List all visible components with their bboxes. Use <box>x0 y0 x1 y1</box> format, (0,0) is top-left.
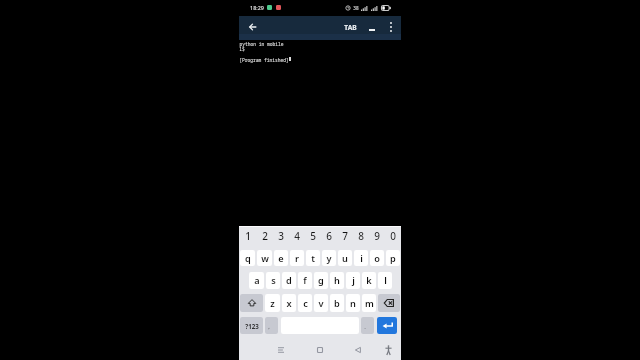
button[interactable]: g <box>314 272 328 289</box>
button[interactable]: u <box>338 250 352 266</box>
staticText: q <box>245 252 251 265</box>
staticText: f <box>303 274 307 287</box>
button[interactable]: TAB <box>339 18 361 36</box>
staticText: n <box>350 297 356 310</box>
button[interactable]: 3 <box>273 228 289 244</box>
button[interactable]: Enter <box>377 317 397 334</box>
staticText: 7 <box>342 229 348 243</box>
button[interactable]: p <box>386 250 400 266</box>
button[interactable]: Back <box>350 342 366 358</box>
button[interactable]: 7 <box>337 228 353 244</box>
button[interactable]: Backspace <box>378 294 400 312</box>
staticText: x <box>286 297 292 310</box>
button[interactable]: w <box>257 250 272 266</box>
button[interactable]: Shift <box>240 294 263 312</box>
staticText: u <box>342 252 348 265</box>
button[interactable]: Insert underscore <box>364 18 380 36</box>
staticText: p <box>390 252 396 265</box>
button[interactable]: 6 <box>321 228 337 244</box>
staticText: 38 <box>353 5 359 11</box>
button[interactable]: a <box>249 272 264 289</box>
staticText: 0 <box>390 229 396 243</box>
button[interactable]: n <box>346 294 360 312</box>
staticText: 4 <box>294 229 300 243</box>
button[interactable]: 4 <box>289 228 305 244</box>
button[interactable]: v <box>314 294 328 312</box>
button[interactable]: j <box>346 272 360 289</box>
staticText: TAB <box>344 23 357 32</box>
button[interactable]: Recents <box>273 342 289 358</box>
staticText: 3 <box>278 229 284 243</box>
staticText: t <box>311 252 315 265</box>
button[interactable]: i <box>354 250 368 266</box>
staticText: python in mobile <box>239 41 284 47</box>
staticText: 2 <box>262 229 268 243</box>
staticText: 5 <box>310 229 316 243</box>
button[interactable]: 9 <box>369 228 385 244</box>
staticText: b <box>334 297 340 310</box>
staticText: j <box>352 274 355 287</box>
button[interactable]: x <box>282 294 296 312</box>
staticText: d <box>286 274 292 287</box>
button[interactable]: 2 <box>256 228 273 244</box>
button[interactable]: l <box>378 272 392 289</box>
staticText: 18:29 <box>250 4 264 11</box>
staticText: [Program finished] <box>239 57 289 63</box>
button[interactable]: q <box>240 250 255 266</box>
staticText: h <box>334 274 340 287</box>
button[interactable]: Comma <box>265 317 278 334</box>
staticText: w <box>261 252 269 265</box>
button[interactable]: t <box>306 250 320 266</box>
button[interactable]: 8 <box>353 228 369 244</box>
staticText: ?123 <box>245 322 259 330</box>
other: Backspace <box>384 299 394 307</box>
button[interactable]: o <box>370 250 384 266</box>
button[interactable]: d <box>282 272 296 289</box>
staticText: e <box>278 252 284 265</box>
staticText: 6 <box>326 229 332 243</box>
staticText: z <box>270 297 275 310</box>
button[interactable]: k <box>362 272 376 289</box>
button[interactable]: e <box>274 250 288 266</box>
staticText: o <box>374 252 380 265</box>
button[interactable]: h <box>330 272 344 289</box>
staticText: c <box>303 297 308 310</box>
button[interactable]: s <box>266 272 280 289</box>
button[interactable]: m <box>362 294 376 312</box>
button[interactable]: Period <box>361 317 374 334</box>
button[interactable]: r <box>290 250 304 266</box>
button[interactable]: 0 <box>385 228 401 244</box>
staticText: 8 <box>358 229 364 243</box>
button[interactable]: z <box>265 294 280 312</box>
button[interactable]: c <box>298 294 312 312</box>
button[interactable]: y <box>322 250 336 266</box>
staticText: a <box>254 274 260 287</box>
button[interactable]: f <box>298 272 312 289</box>
staticText: 1 <box>245 229 251 243</box>
staticText: v <box>318 297 324 310</box>
staticText: s <box>271 274 276 287</box>
staticText: l <box>384 274 387 287</box>
staticText: i <box>360 252 363 265</box>
button[interactable]: Accessibility <box>380 342 396 358</box>
button[interactable]: Symbols <box>240 317 263 334</box>
staticText: y <box>326 252 332 265</box>
button[interactable]: More options <box>383 18 399 36</box>
staticText: g <box>318 274 324 287</box>
staticText: r <box>295 252 299 265</box>
staticText: , <box>268 323 270 331</box>
staticText: 1$ <box>239 46 245 52</box>
other: Shift <box>248 299 256 307</box>
staticText: 9 <box>374 229 380 243</box>
button[interactable]: Home <box>312 342 328 358</box>
staticText: m <box>365 297 374 310</box>
staticText: k <box>366 274 372 287</box>
button[interactable]: 1 <box>239 228 256 244</box>
button[interactable]: 5 <box>305 228 321 244</box>
button[interactable]: Back <box>245 20 259 34</box>
button[interactable]: b <box>330 294 344 312</box>
staticText: . <box>364 323 366 331</box>
